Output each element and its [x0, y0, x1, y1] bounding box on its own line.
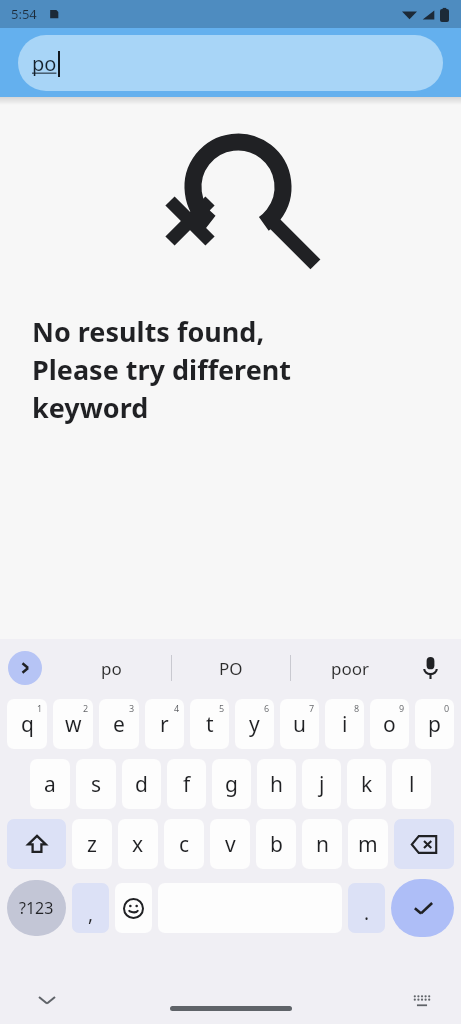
button[interactable]: k	[347, 759, 386, 809]
staticText: 6	[264, 702, 270, 714]
button[interactable]: Switch keyboard	[407, 985, 437, 1015]
button[interactable]: z	[72, 819, 112, 869]
button[interactable]: h	[257, 759, 296, 809]
staticText: 1	[37, 702, 43, 714]
staticText: poor	[331, 657, 370, 680]
staticText: ,	[88, 901, 94, 927]
staticText: 5	[219, 702, 225, 714]
button[interactable]: q	[7, 699, 47, 749]
staticText: b	[270, 830, 283, 859]
staticText: k	[361, 770, 373, 799]
staticText: n	[316, 830, 329, 859]
staticText: 0	[444, 702, 450, 714]
staticText: c	[179, 830, 190, 859]
staticText: z	[87, 830, 97, 859]
button[interactable]: t	[190, 699, 229, 749]
button[interactable]: More suggestions	[8, 651, 42, 685]
staticText: w	[65, 710, 82, 739]
button[interactable]: po	[52, 644, 171, 692]
button[interactable]: a	[30, 759, 70, 809]
button[interactable]: Hide keyboard	[30, 983, 64, 1017]
button[interactable]: Shift	[7, 819, 66, 869]
button[interactable]: b	[256, 819, 296, 869]
staticText: e	[113, 710, 125, 739]
button[interactable]: l	[392, 759, 431, 809]
staticText: po	[32, 50, 57, 77]
staticText: 2	[83, 702, 89, 714]
staticText: m	[358, 830, 378, 859]
staticText: 3	[129, 702, 135, 714]
button[interactable]: Emoji	[115, 883, 152, 933]
button[interactable]: v	[210, 819, 250, 869]
button[interactable]: i	[325, 699, 364, 749]
staticText: t	[206, 710, 214, 739]
staticText: s	[91, 770, 102, 799]
staticText: r	[160, 710, 169, 739]
button[interactable]: p	[415, 699, 454, 749]
staticText: ?123	[19, 897, 54, 919]
button[interactable]: d	[122, 759, 161, 809]
button[interactable]: e	[99, 699, 139, 749]
staticText: .	[364, 900, 370, 926]
button[interactable]: ?123	[7, 880, 66, 936]
button[interactable]: r	[145, 699, 184, 749]
button[interactable]: ,	[72, 883, 109, 933]
staticText: PO	[219, 657, 243, 680]
staticText: v	[225, 830, 236, 859]
staticText: p	[428, 710, 441, 739]
staticText: x	[132, 830, 144, 859]
button[interactable]: po	[18, 35, 443, 91]
button[interactable]: Backspace	[394, 819, 454, 869]
staticText: o	[383, 710, 396, 739]
button[interactable]: PO	[172, 644, 290, 692]
staticText: a	[44, 770, 56, 799]
button[interactable]: f	[167, 759, 206, 809]
staticText: i	[342, 710, 348, 739]
staticText: h	[270, 770, 283, 799]
staticText: y	[249, 710, 260, 739]
staticText: No results found, Please try different k…	[32, 313, 292, 426]
staticText: g	[225, 770, 238, 799]
staticText: u	[293, 710, 306, 739]
staticText: po	[101, 657, 122, 680]
staticText: j	[319, 770, 325, 799]
button[interactable]: .	[348, 883, 385, 933]
staticText: 7	[309, 702, 315, 714]
staticText: q	[21, 710, 34, 739]
button[interactable]: y	[235, 699, 274, 749]
button[interactable]: m	[348, 819, 388, 869]
staticText: 8	[354, 702, 360, 714]
staticText: 9	[399, 702, 405, 714]
button[interactable]: c	[164, 819, 204, 869]
button[interactable]: o	[370, 699, 409, 749]
staticText: f	[183, 770, 191, 799]
staticText: 5:54	[11, 5, 37, 23]
button[interactable]: g	[212, 759, 251, 809]
button[interactable]: s	[76, 759, 116, 809]
button[interactable]: j	[302, 759, 341, 809]
button[interactable]: Voice input	[413, 651, 447, 685]
button[interactable]: n	[302, 819, 342, 869]
staticText: d	[135, 770, 148, 799]
button[interactable]: u	[280, 699, 319, 749]
staticText: 4	[174, 702, 180, 714]
staticText: l	[409, 770, 415, 799]
button[interactable]: x	[118, 819, 158, 869]
button[interactable]: w	[53, 699, 93, 749]
button[interactable]: Enter	[391, 879, 454, 937]
button[interactable]: poor	[291, 644, 409, 692]
